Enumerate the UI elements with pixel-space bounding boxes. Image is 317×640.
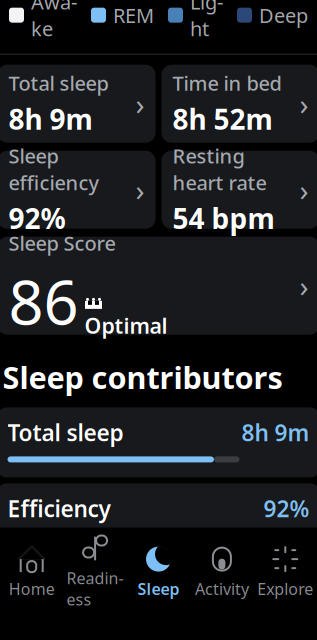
button[interactable]: Sleep Score	[0, 237, 317, 335]
staticText: Sleep	[137, 578, 179, 599]
staticText: Sleep contributors	[2, 357, 282, 397]
staticText: 8h 9m	[8, 100, 92, 138]
button[interactable]: Resting heart rate	[161, 151, 317, 229]
staticText: ›	[135, 84, 144, 123]
button[interactable]: Time in bed	[161, 65, 317, 143]
staticText: ›	[135, 170, 144, 209]
staticText: Deep	[259, 2, 308, 28]
staticText: 86	[8, 260, 78, 342]
staticText: 8h 9m	[241, 417, 309, 447]
button[interactable]: Explore	[254, 538, 317, 603]
staticText: ›	[299, 170, 308, 209]
staticText: Light	[190, 0, 223, 42]
staticText: Home	[9, 578, 55, 599]
staticText: Sleep Score	[8, 230, 115, 256]
staticText: Total sleep	[8, 70, 108, 96]
staticText: 92%	[8, 200, 65, 237]
staticText: Awake	[31, 0, 77, 42]
staticText: Restfulness	[7, 569, 132, 599]
button[interactable]: Activity	[190, 538, 254, 603]
button[interactable]: Sleep	[127, 538, 190, 603]
staticText: 54 bpm	[172, 200, 274, 237]
button[interactable]: Total sleep	[0, 65, 155, 143]
staticText: 8h 52m	[172, 100, 272, 138]
button[interactable]: Restfulness	[0, 559, 317, 629]
staticText: Total sleep	[7, 417, 123, 447]
staticText: ›	[299, 84, 308, 123]
staticText: Sleep efficiency	[8, 142, 99, 196]
staticText: Activity	[195, 578, 249, 599]
staticText: Readiness	[67, 567, 124, 610]
staticText: REM	[113, 2, 154, 28]
staticText: Explore	[257, 578, 313, 599]
button[interactable]: Home	[0, 538, 63, 603]
staticText: 92%	[263, 493, 309, 523]
staticText: ›	[299, 266, 308, 305]
button[interactable]: Total sleep	[0, 407, 317, 477]
button[interactable]: Readiness	[63, 527, 127, 614]
staticText: Good	[251, 569, 309, 599]
staticText: Resting heart rate	[172, 142, 266, 196]
staticText: Optimal	[84, 311, 167, 340]
button[interactable]: Sleep efficiency	[0, 151, 155, 229]
button[interactable]: Efficiency	[0, 483, 317, 553]
staticText: Time in bed	[172, 70, 281, 96]
staticText: Efficiency	[7, 493, 110, 523]
